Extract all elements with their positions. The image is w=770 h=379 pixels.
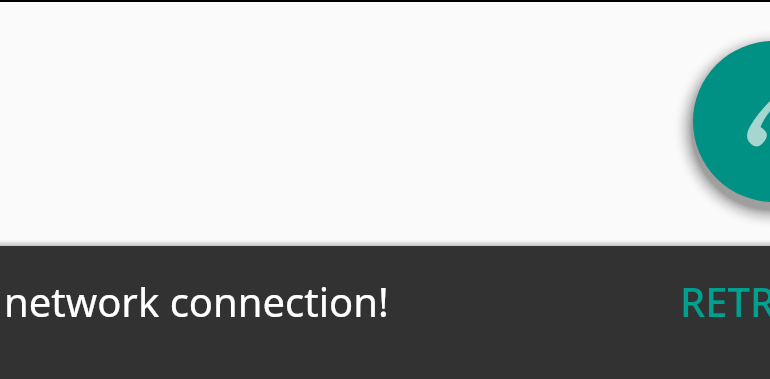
staticText: network connection! xyxy=(4,274,389,328)
staticText: RETRY xyxy=(680,274,770,328)
button[interactable]: Call xyxy=(693,41,770,202)
button[interactable]: network connection! xyxy=(0,246,770,379)
